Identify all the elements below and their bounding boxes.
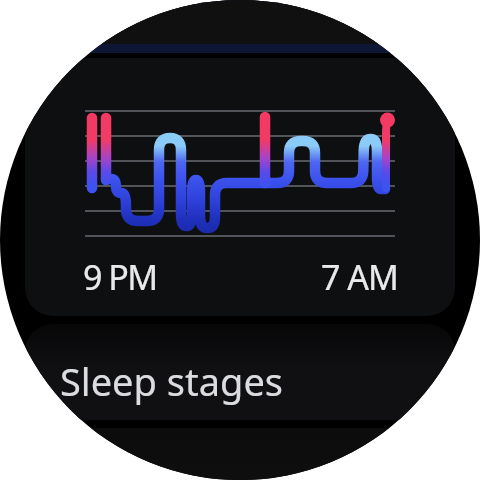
button[interactable] [25,428,455,480]
button[interactable] [25,58,455,316]
staticText: 7 AM [321,254,398,300]
button[interactable]: Sleep stages [25,324,455,420]
staticText: Sleep stages [60,355,284,407]
button[interactable] [25,0,455,53]
staticText: 9 PM [83,254,157,300]
